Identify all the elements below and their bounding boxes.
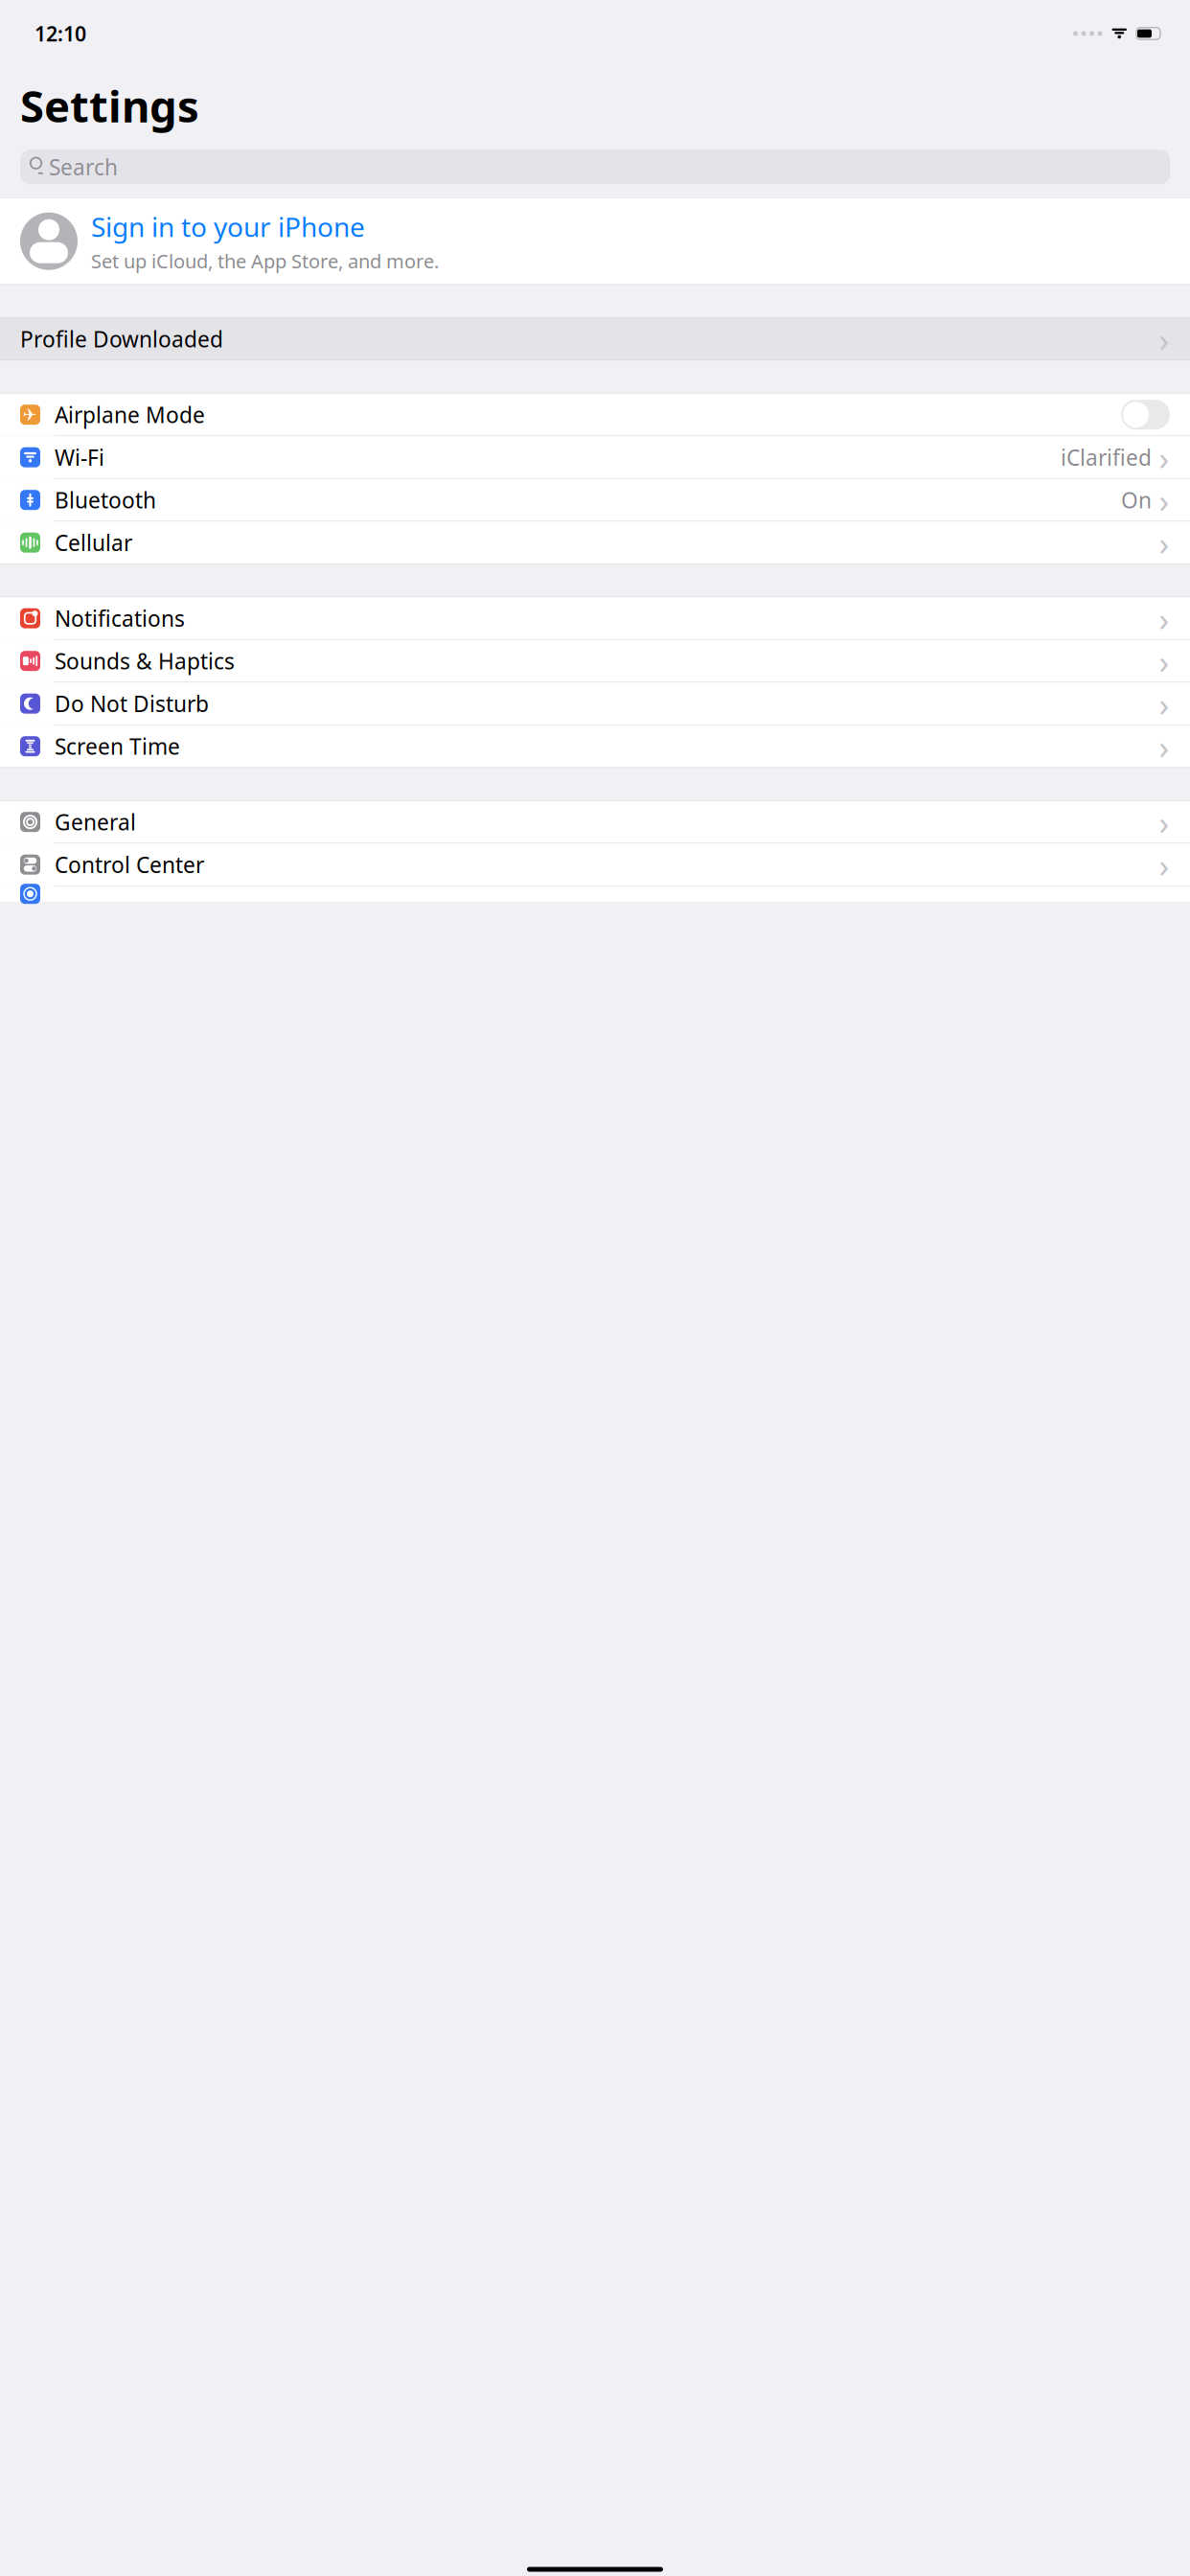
staticText: Screen Time [55,732,180,761]
button[interactable]: Sign in to your iPhone [0,198,1190,284]
staticText: Profile Downloaded [20,324,223,353]
staticText: Search [49,152,118,181]
staticText: 12:10 [34,20,86,47]
staticText: Sign in to your iPhone [91,209,365,244]
staticText: › [1159,435,1169,479]
button[interactable]: Notifications [0,597,1190,639]
staticText: › [1159,800,1169,844]
staticText: On [1121,485,1152,514]
staticText: › [1159,521,1169,565]
staticText: ✈ [23,405,37,424]
button[interactable]: Sounds & Haptics [0,640,1190,682]
button[interactable]: Do Not Disturb [0,683,1190,725]
staticText: Airplane Mode [55,400,205,429]
staticText: › [1159,682,1169,726]
staticText: Sounds & Haptics [55,646,235,675]
button[interactable]: Bluetooth [0,479,1190,521]
button[interactable]: Screen Time [0,725,1190,767]
button[interactable]: Control Center [0,844,1190,886]
button[interactable]: ✈ [0,394,1190,436]
staticText: iClarified [1061,443,1152,472]
staticText: › [1159,843,1169,887]
button[interactable]: Cellular [0,522,1190,564]
staticText: General [55,807,136,836]
staticText: › [1159,317,1169,361]
staticText: › [1159,596,1169,640]
staticText: Do Not Disturb [55,689,209,718]
button[interactable]: Wi-Fi [0,436,1190,478]
staticText: › [1159,478,1169,522]
staticText: Settings [20,77,199,134]
staticText: Control Center [55,850,204,879]
staticText: Cellular [55,528,132,557]
button[interactable]: Search [20,150,1170,184]
staticText: Set up iCloud, the App Store, and more. [91,248,439,274]
staticText: Notifications [55,604,185,633]
staticText: › [1159,724,1169,768]
staticText: › [1159,639,1169,683]
button[interactable]: General [0,801,1190,843]
staticText: Wi-Fi [55,443,104,472]
button[interactable]: Profile Downloaded [0,318,1190,360]
staticText: Bluetooth [55,485,156,514]
